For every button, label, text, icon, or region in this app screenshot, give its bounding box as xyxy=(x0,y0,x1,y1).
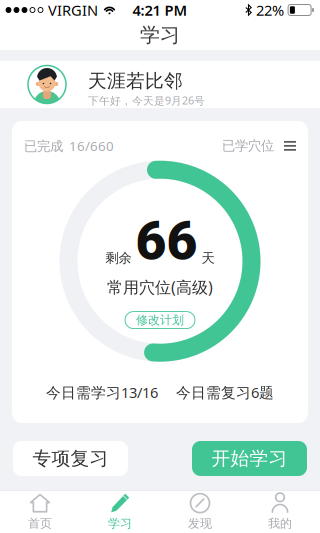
staticText: 开始学习 xyxy=(211,447,287,470)
staticText: 天涯若比邻 xyxy=(88,69,183,92)
staticText: 学习 xyxy=(108,516,132,531)
staticText: 4:21 PM xyxy=(132,0,187,20)
button[interactable]: 我的 xyxy=(240,490,320,533)
staticText: 天 xyxy=(201,250,214,266)
staticText: 已学穴位 xyxy=(222,138,274,154)
staticText: 下午好，今天是9月26号 xyxy=(88,93,205,108)
button[interactable]: 专项复习 xyxy=(13,441,128,476)
staticText: 剩余 xyxy=(105,250,131,266)
staticText: 专项复习 xyxy=(32,447,108,470)
staticText: 今日需复习6题 xyxy=(176,382,274,402)
staticText: 修改计划 xyxy=(136,313,184,327)
button[interactable]: 开始学习 xyxy=(192,441,307,476)
staticText: VIRGIN xyxy=(48,0,98,20)
staticText: 22% xyxy=(256,0,284,20)
staticText: 常用穴位(高级) xyxy=(107,276,213,297)
button[interactable]: 修改计划 xyxy=(125,312,195,329)
staticText: 学习 xyxy=(140,23,180,47)
staticText: 66 xyxy=(135,210,197,272)
button[interactable]: 学习 xyxy=(80,490,160,533)
staticText: 我的 xyxy=(268,516,292,531)
staticText: 已完成 16/660 xyxy=(24,137,114,155)
button[interactable]: 首页 xyxy=(0,490,80,533)
staticText: 发现 xyxy=(188,516,212,531)
staticText: 首页 xyxy=(28,516,52,531)
button[interactable]: 发现 xyxy=(160,490,240,533)
staticText: 今日需学习13/16 xyxy=(46,382,158,402)
